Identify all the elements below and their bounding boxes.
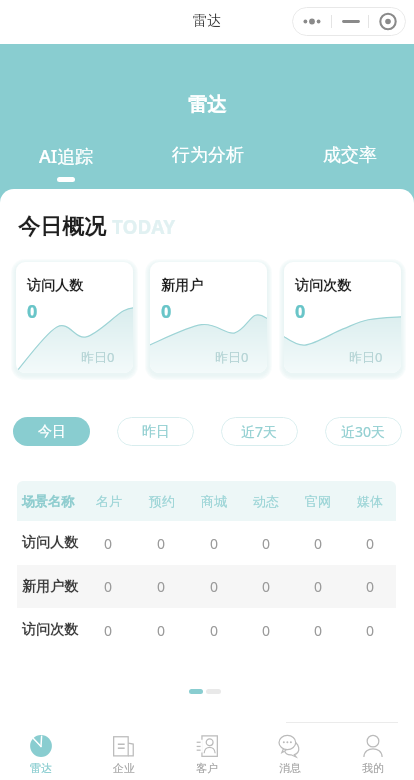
button[interactable]: 访问人数: [16, 262, 133, 373]
staticText: 商城: [201, 493, 227, 509]
staticText: 雷达: [30, 761, 52, 775]
staticText: 近30天: [341, 422, 386, 441]
staticText: 新用户: [161, 277, 203, 295]
staticText: 0: [104, 621, 113, 640]
staticText: 0: [262, 534, 271, 553]
staticText: 近7天: [241, 422, 278, 441]
staticText: 0: [314, 577, 323, 596]
button[interactable]: 昨日: [117, 417, 194, 446]
staticText: 0: [157, 534, 166, 553]
button[interactable]: 客户: [165, 735, 248, 780]
button[interactable]: 近7天: [221, 417, 298, 446]
button[interactable]: 行为分析: [137, 144, 279, 180]
staticText: 企业: [113, 761, 135, 775]
staticText: 0: [161, 299, 172, 324]
staticText: 消息: [279, 761, 301, 775]
staticText: 0: [262, 621, 271, 640]
staticText: 新用户数: [22, 578, 78, 596]
staticText: 访问次数: [295, 277, 351, 295]
staticText: 行为分析: [172, 144, 244, 167]
staticText: 场景名称: [22, 493, 74, 509]
staticText: 动态: [253, 493, 279, 509]
button[interactable]: Minimize: [332, 7, 369, 36]
staticText: 0: [295, 299, 306, 324]
staticText: 0: [210, 577, 219, 596]
staticText: 我的: [362, 761, 384, 775]
staticText: 客户: [196, 761, 218, 775]
button[interactable]: 访问次数: [284, 262, 401, 373]
staticText: 昨日0: [215, 348, 249, 366]
button[interactable]: More options: [292, 7, 331, 36]
staticText: 0: [210, 621, 219, 640]
staticText: 昨日0: [81, 348, 115, 366]
staticText: 0: [366, 577, 375, 596]
staticText: 0: [104, 534, 113, 553]
button[interactable]: 成交率: [279, 144, 414, 180]
staticText: 昨日0: [349, 348, 383, 366]
button[interactable]: 新用户: [150, 262, 267, 373]
staticText: 0: [157, 621, 166, 640]
staticText: 0: [157, 577, 166, 596]
staticText: 0: [27, 299, 38, 324]
staticText: 雷达: [193, 12, 221, 30]
staticText: AI追踪: [39, 144, 94, 169]
staticText: TODAY: [112, 214, 176, 240]
staticText: 访问人数: [27, 277, 83, 295]
button[interactable]: AI追踪: [0, 144, 137, 182]
staticText: 昨日: [142, 423, 170, 441]
staticText: 0: [314, 534, 323, 553]
staticText: 今日: [38, 423, 66, 441]
button[interactable]: 近30天: [325, 417, 402, 446]
button[interactable]: 企业: [82, 735, 165, 780]
staticText: 0: [366, 534, 375, 553]
staticText: 0: [262, 577, 271, 596]
staticText: 雷达: [0, 93, 414, 117]
button[interactable]: Close: [369, 7, 406, 36]
staticText: 官网: [305, 493, 331, 509]
staticText: 今日概况: [18, 213, 106, 241]
staticText: 媒体: [357, 493, 383, 509]
staticText: 0: [366, 621, 375, 640]
staticText: 成交率: [323, 144, 377, 167]
staticText: 名片: [96, 493, 122, 509]
staticText: 0: [104, 577, 113, 596]
staticText: 0: [314, 621, 323, 640]
button[interactable]: 消息: [248, 735, 331, 780]
staticText: 访问人数: [22, 534, 78, 552]
staticText: 预约: [149, 493, 175, 509]
staticText: 访问次数: [22, 621, 78, 639]
button[interactable]: 我的: [331, 735, 414, 780]
button[interactable]: 今日: [13, 417, 90, 446]
staticText: 0: [210, 534, 219, 553]
button[interactable]: 雷达: [0, 735, 82, 780]
